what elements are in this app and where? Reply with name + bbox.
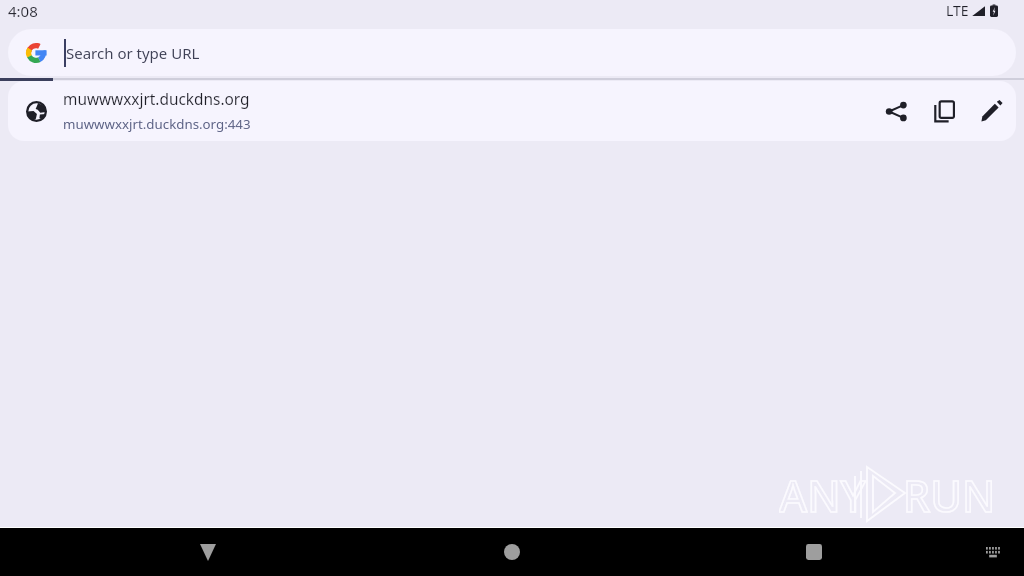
staticText: RUN [903,466,996,522]
button[interactable]: Switch keyboard [973,532,1013,572]
staticText: Search or type URL [66,43,200,63]
button[interactable]: Share [872,87,920,135]
button[interactable]: muwwwxxjrt.duckdns.org [8,81,1016,141]
staticText: ANY [779,466,866,522]
button[interactable]: Copy [920,87,968,135]
staticText: muwwwxxjrt.duckdns.org:443 [63,115,251,133]
staticText: LTE [946,1,969,20]
button[interactable]: Back [184,528,232,576]
button[interactable]: Search or type URL [8,29,1016,76]
staticText: muwwwxxjrt.duckdns.org [63,89,250,110]
button[interactable]: Home [488,528,536,576]
button[interactable]: Recents [790,528,838,576]
staticText: 4:08 [8,1,38,21]
button[interactable]: Edit [968,87,1016,135]
